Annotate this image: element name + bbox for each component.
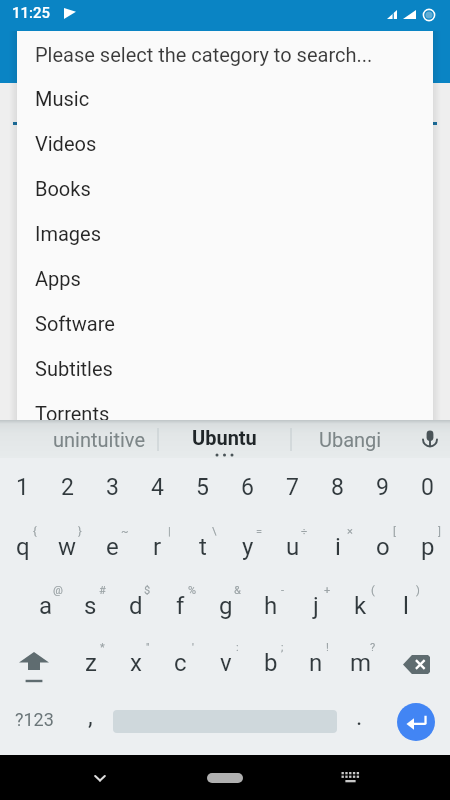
button[interactable]: t (180, 513, 225, 571)
button[interactable]: Images (17, 211, 433, 256)
staticText: % (188, 584, 197, 597)
button[interactable]: 1 (0, 460, 45, 514)
button[interactable]: unintuitive (40, 420, 158, 458)
button[interactable]: . (337, 693, 382, 748)
button[interactable]: Music (17, 76, 433, 121)
staticText: , (88, 703, 93, 731)
staticText: r (153, 533, 162, 561)
staticText: n (309, 649, 323, 677)
button[interactable]: Space (113, 693, 337, 748)
staticText: t (199, 533, 207, 561)
button[interactable]: Backspace (383, 635, 450, 693)
button[interactable]: 5 (180, 460, 225, 514)
staticText: e (106, 533, 119, 561)
button[interactable]: Voice input (409, 420, 450, 458)
staticText: Apps (35, 267, 81, 290)
button[interactable]: e (90, 513, 135, 571)
staticText: ~ (121, 525, 129, 538)
staticText: 4 (151, 474, 164, 501)
button[interactable]: 0 (405, 460, 450, 514)
button[interactable]: Ubangi (291, 420, 409, 458)
button[interactable]: s (68, 572, 113, 630)
button[interactable]: r (135, 513, 180, 571)
staticText: Images (35, 222, 102, 245)
button[interactable]: k (338, 572, 383, 630)
button[interactable]: y (225, 513, 270, 571)
button[interactable]: a (23, 572, 68, 630)
staticText: k (354, 592, 367, 620)
staticText: = (256, 525, 263, 538)
button[interactable]: 3 (90, 460, 135, 514)
button[interactable]: b (248, 629, 293, 687)
staticText: Music (35, 87, 90, 110)
staticText: @ (53, 584, 63, 597)
button[interactable]: w (45, 513, 90, 571)
button[interactable]: ?123 (0, 693, 68, 748)
staticText: i (335, 533, 341, 561)
button[interactable]: v (203, 629, 248, 687)
staticText: * (100, 641, 105, 654)
button[interactable]: Books (17, 166, 433, 211)
staticText: { (33, 525, 37, 538)
button[interactable]: q (0, 513, 45, 571)
staticText: 5 (196, 474, 209, 501)
button[interactable]: Software (17, 301, 433, 346)
button[interactable]: Videos (17, 121, 433, 166)
button[interactable]: Subtitles (17, 346, 433, 391)
button[interactable]: 8 (315, 460, 360, 514)
button[interactable]: i (315, 513, 360, 571)
staticText: p (421, 533, 435, 561)
button[interactable]: 7 (270, 460, 315, 514)
button[interactable]: , (68, 693, 113, 748)
button[interactable]: Home (185, 755, 265, 800)
staticText: . (356, 703, 363, 731)
button[interactable]: Enter (382, 693, 450, 748)
staticText: 9 (376, 474, 389, 501)
button[interactable]: f (158, 572, 203, 630)
button[interactable]: Hide keyboard (75, 755, 125, 800)
staticText: ' (192, 641, 194, 654)
button[interactable]: l (383, 572, 428, 630)
button[interactable]: Shift (0, 635, 67, 693)
button[interactable]: Apps (17, 256, 433, 301)
button[interactable]: 4 (135, 460, 180, 514)
button[interactable]: u (270, 513, 315, 571)
button[interactable]: 2 (45, 460, 90, 514)
staticText: h (264, 592, 278, 620)
button[interactable]: c (158, 629, 203, 687)
staticText: j (313, 592, 319, 620)
staticText: 6 (241, 474, 254, 501)
button[interactable]: h (248, 572, 293, 630)
staticText: ÷ (301, 525, 308, 538)
button[interactable]: d (113, 572, 158, 630)
staticText: unintuitive (53, 428, 145, 451)
staticText: g (219, 592, 233, 620)
button[interactable]: Ubuntu (158, 420, 291, 458)
button[interactable]: j (293, 572, 338, 630)
staticText: Videos (35, 132, 97, 155)
staticText: Please select the category to search... (35, 43, 373, 66)
button[interactable]: p (405, 513, 450, 571)
staticText: & (234, 584, 241, 597)
staticText: Books (35, 177, 91, 200)
button[interactable]: 6 (225, 460, 270, 514)
button[interactable]: Torrents (17, 391, 433, 436)
button[interactable]: o (360, 513, 405, 571)
button[interactable]: x (113, 629, 158, 687)
staticText: y (242, 533, 254, 561)
button[interactable]: 9 (360, 460, 405, 514)
staticText: \ (212, 525, 217, 538)
button[interactable]: g (203, 572, 248, 630)
staticText: Software (35, 312, 115, 335)
staticText: c (174, 649, 187, 677)
staticText: ?123 (15, 709, 54, 730)
button[interactable]: Switch keyboard (325, 755, 375, 800)
button[interactable]: n (293, 629, 338, 687)
staticText: 3 (106, 474, 119, 501)
staticText: l (403, 592, 409, 620)
staticText: Subtitles (35, 357, 113, 380)
button[interactable]: m (338, 629, 383, 687)
staticText: b (264, 649, 278, 677)
staticText: d (129, 592, 143, 620)
button[interactable]: z (68, 629, 113, 687)
